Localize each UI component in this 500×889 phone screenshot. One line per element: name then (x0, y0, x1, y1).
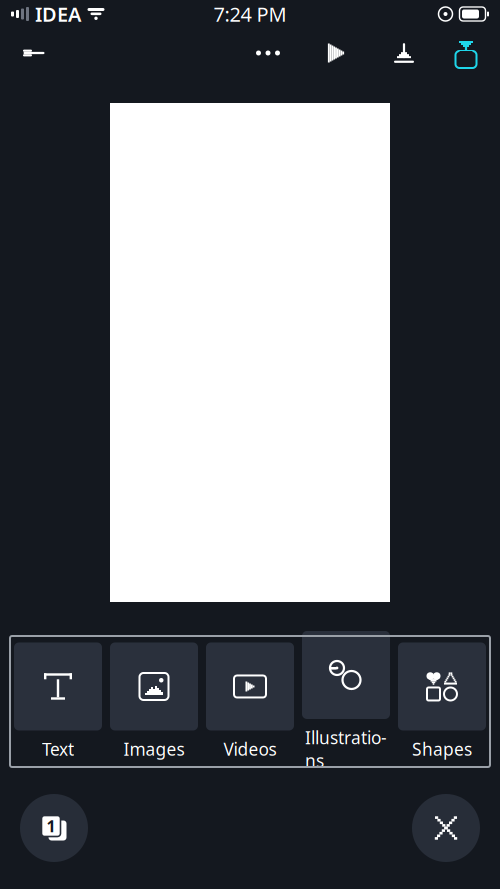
button[interactable]: More options (246, 31, 290, 75)
button[interactable]: Text (14, 642, 102, 760)
button[interactable]: Pages (20, 794, 88, 862)
staticText: 1 (46, 815, 55, 837)
staticText: 7:24 PM (213, 1, 286, 27)
staticText: Illustrations (305, 726, 387, 772)
staticText: Images (123, 737, 184, 760)
button[interactable]: Videos (206, 642, 294, 760)
button[interactable]: Back (12, 31, 56, 75)
button[interactable]: Download (382, 31, 426, 75)
button[interactable]: Share (444, 31, 488, 75)
staticText: Text (42, 737, 74, 760)
button[interactable]: Images (110, 642, 198, 760)
staticText: Shapes (412, 737, 472, 760)
staticText: Videos (223, 737, 276, 760)
button[interactable]: Close (412, 794, 480, 862)
button[interactable]: Illustrations (302, 631, 390, 772)
staticText: IDEA (35, 1, 81, 27)
button[interactable]: Shapes (398, 642, 486, 760)
button[interactable]: Preview (314, 31, 358, 75)
